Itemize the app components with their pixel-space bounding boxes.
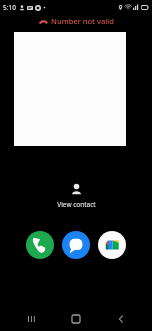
other: Call failed: [39, 17, 48, 26]
button[interactable]: Home: [63, 307, 89, 331]
button[interactable]: Video call with Meet: [98, 231, 126, 259]
button[interactable]: Recent apps: [19, 307, 45, 331]
staticText: View contact: [57, 200, 96, 209]
button[interactable]: Message: [62, 231, 90, 259]
button[interactable]: Back: [108, 307, 134, 331]
staticText: 5:10: [3, 3, 16, 12]
staticText: Number not valid: [51, 16, 114, 26]
button[interactable]: View contact: [51, 182, 102, 210]
button[interactable]: Call failed: [39, 16, 114, 26]
button[interactable]: Call: [26, 231, 54, 259]
